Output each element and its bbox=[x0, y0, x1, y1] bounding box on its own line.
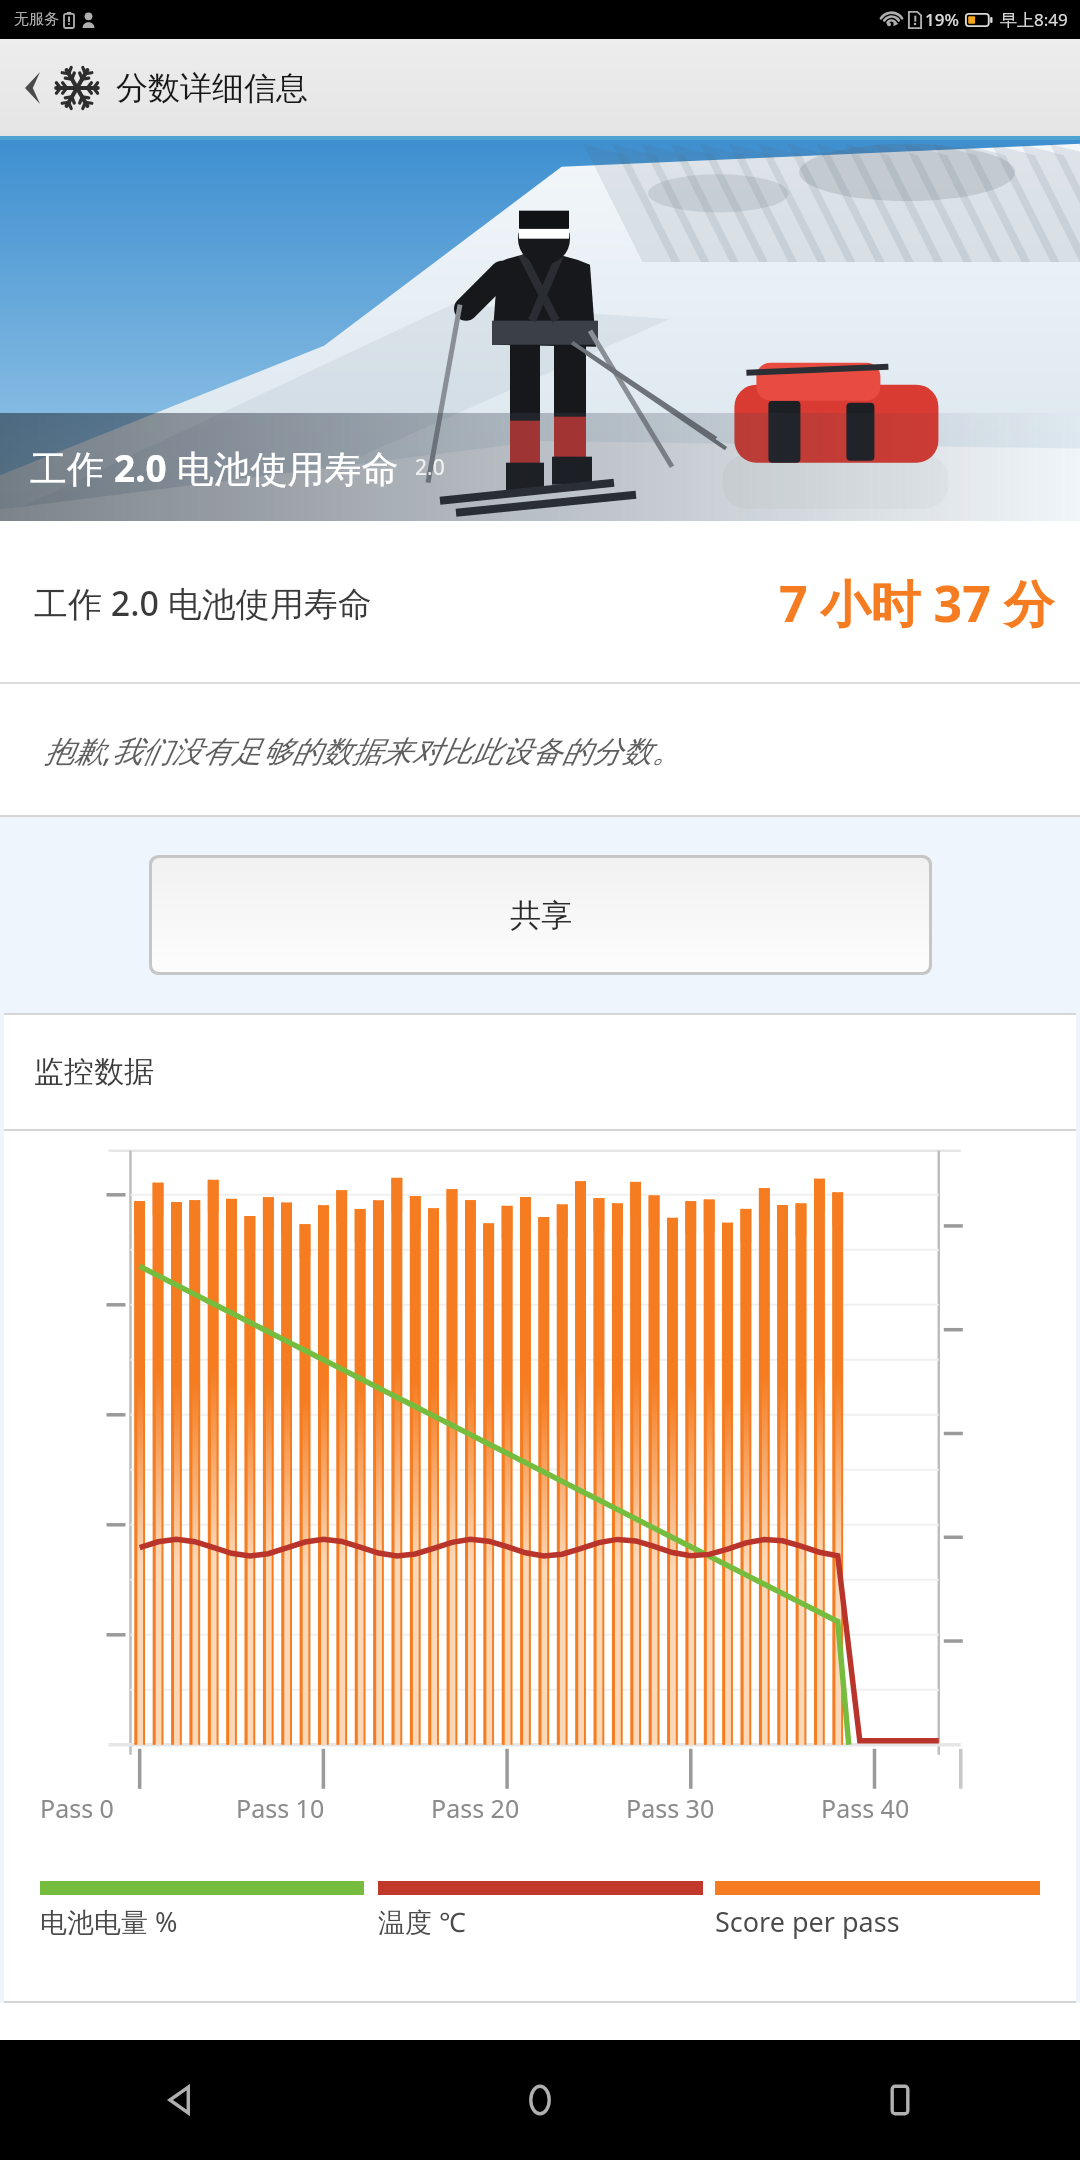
button[interactable]: Back bbox=[0, 2040, 360, 2160]
staticText: 工作 bbox=[30, 442, 114, 493]
staticText: 电池使用寿命 bbox=[167, 442, 399, 493]
staticText: 早上8:49 bbox=[1000, 8, 1068, 31]
staticText: 无服务 bbox=[14, 10, 59, 29]
staticText: Pass 10 bbox=[236, 1791, 325, 1825]
staticText: 7 小时 37 分 bbox=[779, 569, 1054, 637]
staticText: 分数详细信息 bbox=[116, 68, 308, 108]
button[interactable]: Back bbox=[12, 57, 52, 119]
staticText: 温度 ℃ bbox=[378, 1903, 466, 1940]
staticText: 19% bbox=[925, 8, 959, 31]
staticText: 工作 2.0 电池使用寿命 bbox=[34, 580, 372, 626]
staticText: 抱歉,我们没有足够的数据来对比此设备的分数。 bbox=[44, 730, 682, 771]
staticText: 电池电量 % bbox=[40, 1903, 178, 1940]
staticText: Score per pass bbox=[715, 1903, 900, 1940]
staticText: 2.0 bbox=[415, 453, 445, 482]
button[interactable]: 共享 bbox=[152, 858, 929, 972]
staticText: Pass 30 bbox=[626, 1791, 715, 1825]
button[interactable]: Home bbox=[360, 2040, 720, 2160]
button[interactable]: Recents bbox=[720, 2040, 1080, 2160]
staticText: 共享 bbox=[510, 896, 572, 935]
staticText: Pass 0 bbox=[40, 1791, 114, 1825]
staticText: 2.0 bbox=[114, 442, 167, 492]
staticText: Pass 40 bbox=[821, 1791, 910, 1825]
staticText: Pass 20 bbox=[431, 1791, 520, 1825]
staticText: 监控数据 bbox=[34, 1053, 154, 1091]
